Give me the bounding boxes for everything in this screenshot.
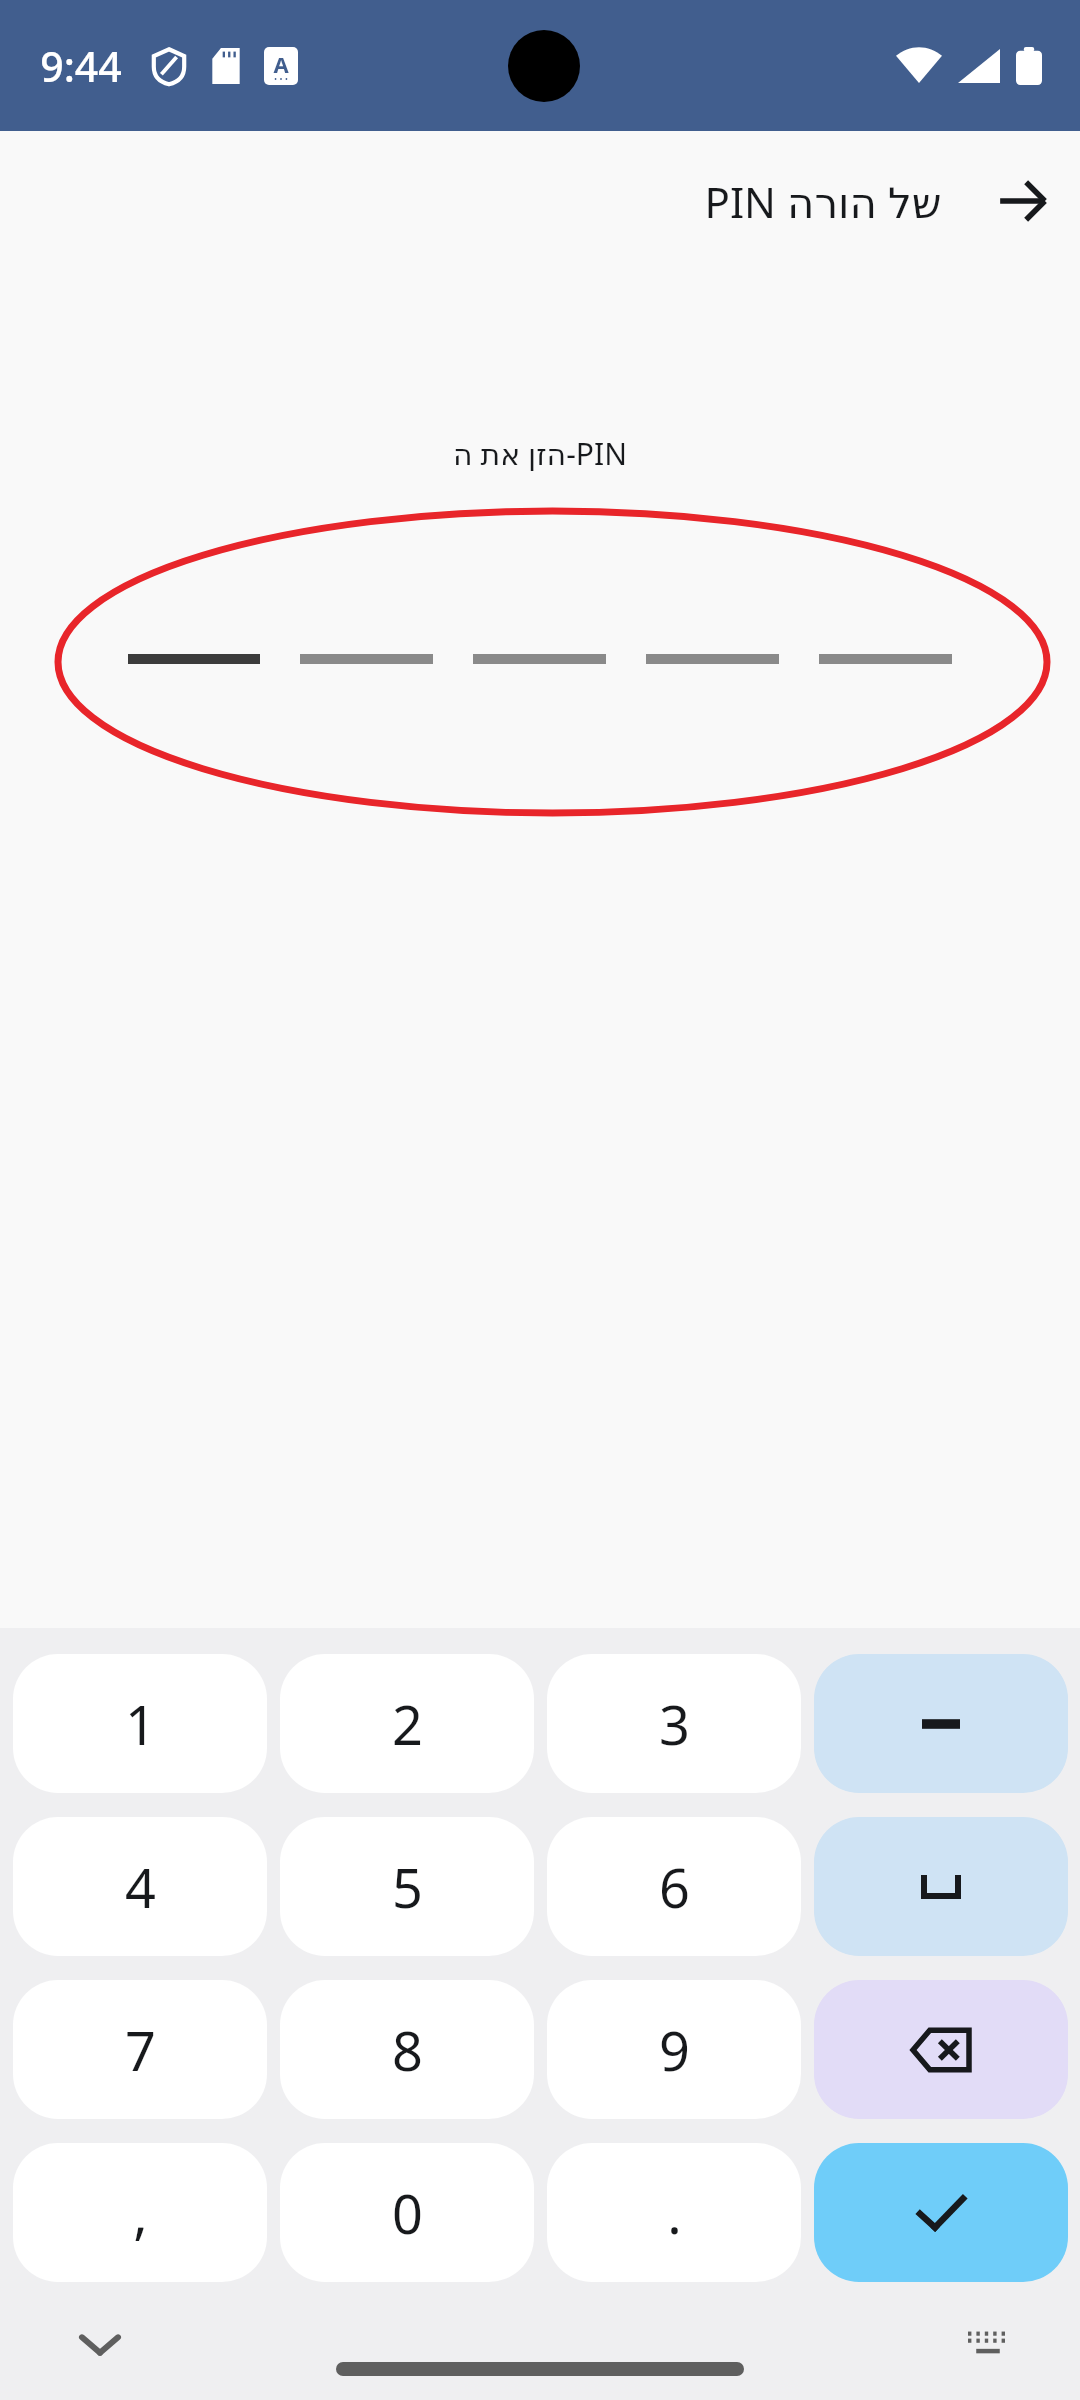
button[interactable]: .	[547, 2143, 801, 2282]
staticText: ,	[133, 2176, 148, 2250]
staticText: .	[667, 2176, 682, 2250]
button[interactable]: 6	[547, 1817, 801, 1956]
staticText: 2	[392, 1687, 423, 1761]
button[interactable]: ,	[13, 2143, 267, 2282]
staticText: 3	[659, 1687, 690, 1761]
staticText: PIN של הורה	[704, 173, 942, 230]
button[interactable]: 7	[13, 1980, 267, 2119]
button[interactable]: 8	[280, 1980, 534, 2119]
button[interactable]: 3	[547, 1654, 801, 1793]
staticText: 1	[125, 1687, 156, 1761]
button[interactable]: 1	[13, 1654, 267, 1793]
button[interactable]: Back	[974, 153, 1070, 249]
button[interactable]: Enter	[814, 2143, 1068, 2282]
staticText: 7	[125, 2013, 156, 2087]
staticText: 6	[659, 1850, 690, 1924]
staticText: 5	[392, 1850, 423, 1924]
staticText: 9	[659, 2013, 690, 2087]
staticText: 4	[125, 1850, 156, 1924]
staticText: הזן את ה-PIN	[453, 433, 627, 474]
button[interactable]: 4	[13, 1817, 267, 1956]
staticText: 8	[392, 2013, 423, 2087]
button[interactable]: 9	[547, 1980, 801, 2119]
button[interactable]: Switch keyboard	[956, 2313, 1020, 2377]
button[interactable]: Dash	[814, 1654, 1068, 1793]
button[interactable]: 2	[280, 1654, 534, 1793]
button[interactable]: Space	[814, 1817, 1068, 1956]
staticText: 0	[392, 2176, 423, 2250]
staticText: 9:44	[40, 38, 122, 94]
staticText: A	[273, 49, 289, 79]
button[interactable]: 0	[280, 2143, 534, 2282]
button[interactable]: Hide keyboard	[68, 2313, 132, 2377]
button[interactable]: Backspace	[814, 1980, 1068, 2119]
button[interactable]: 5	[280, 1817, 534, 1956]
